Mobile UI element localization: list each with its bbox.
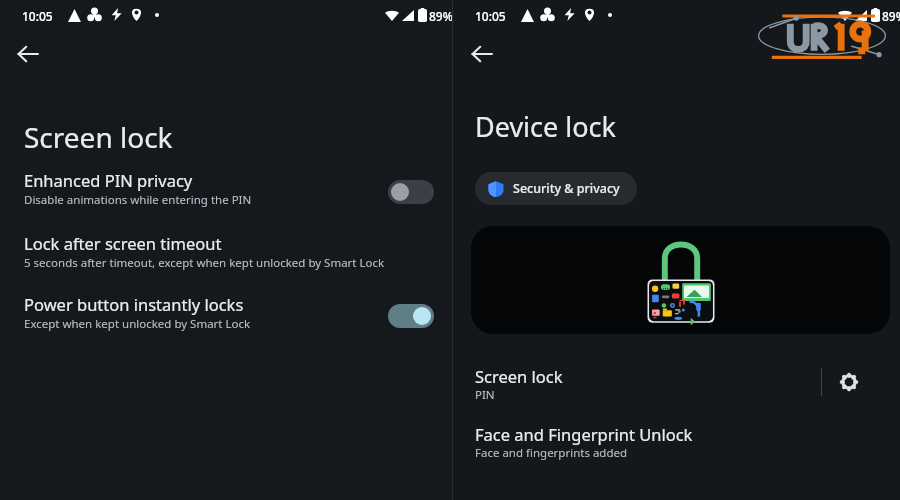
button[interactable]: Screen lock [453,358,900,406]
staticText: Except when kept unlocked by Smart Lock [24,316,251,332]
staticText: Enhanced PIN privacy [24,169,193,191]
staticText: Screen lock [475,365,563,387]
staticText: 10:05 [475,8,506,24]
button[interactable]: Back [10,36,46,72]
button[interactable]: Power button instantly locks [0,288,452,346]
staticText: Screen lock [24,118,173,156]
button[interactable]: Screen lock settings [831,364,867,400]
staticText: Disable animations while entering the PI… [24,192,252,208]
staticText: Lock after screen timeout [24,232,222,254]
staticText: Power button instantly locks [24,293,244,315]
staticText: Device lock [475,108,616,145]
staticText: 89% [429,8,453,24]
staticText: Face and Fingerprint Unlock [475,423,693,445]
staticText: 89% [882,8,900,24]
button[interactable]: Back [464,36,500,72]
staticText: PIN [475,387,495,403]
staticText: 10:05 [22,8,53,24]
staticText: Face and fingerprints added [475,445,628,461]
button[interactable]: Enhanced PIN privacy [0,164,452,222]
button[interactable]: Lock after screen timeout [0,227,452,285]
button[interactable] [471,226,890,334]
button[interactable]: Face and Fingerprint Unlock [453,416,900,464]
staticText: 5 seconds after timeout, except when kep… [24,255,385,271]
button[interactable]: Security & privacy [475,172,637,205]
staticText: Security & privacy [513,180,620,197]
